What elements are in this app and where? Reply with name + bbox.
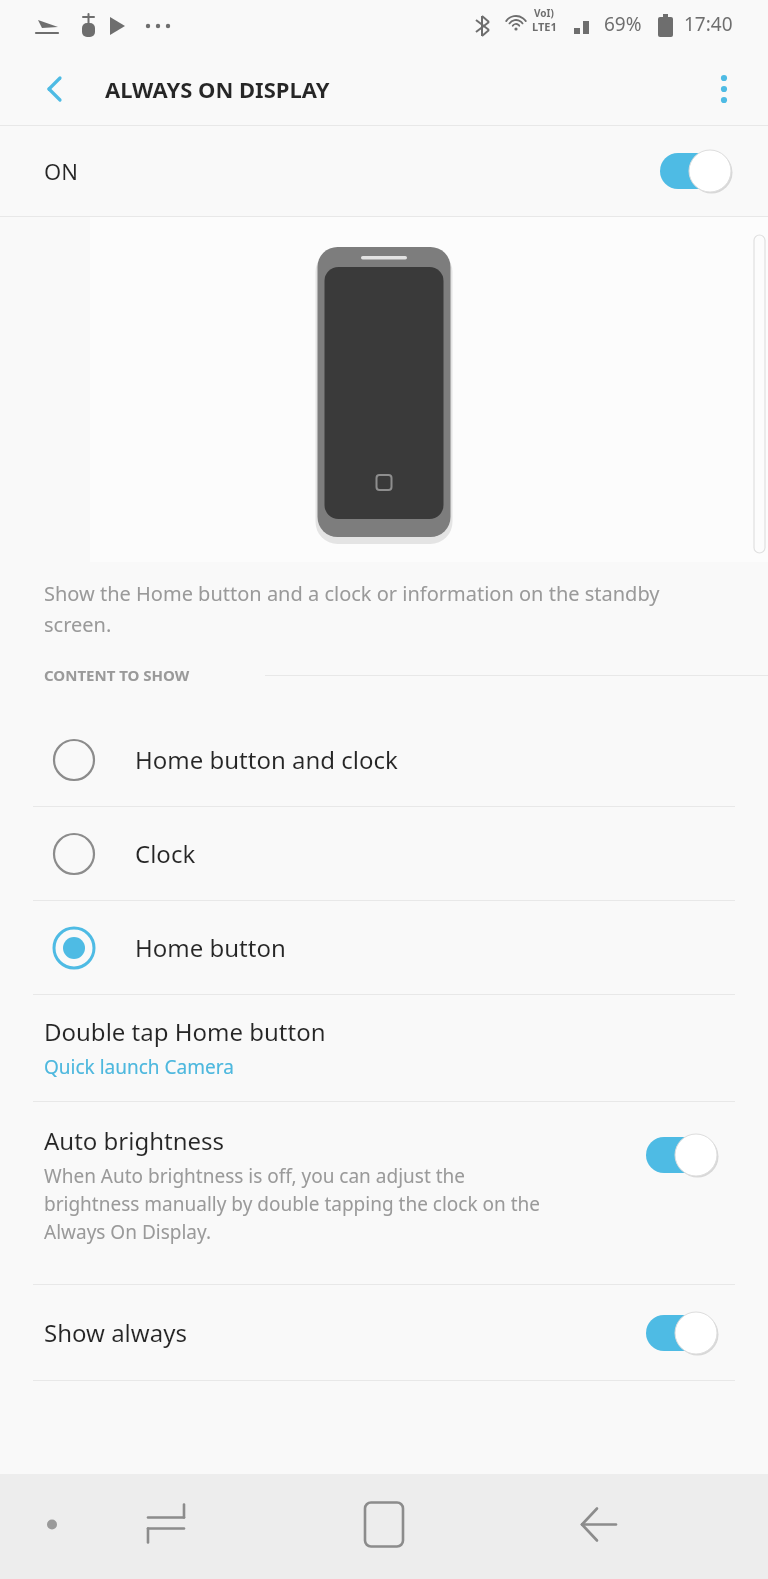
button[interactable]: Recents (136, 1492, 206, 1562)
staticText: Quick launch Camera (44, 1054, 234, 1080)
staticText: LTE1 (532, 19, 557, 34)
button[interactable]: Home button (0, 901, 768, 994)
staticText: 69% (604, 11, 642, 37)
staticText: ALWAYS ON DISPLAY (105, 74, 330, 104)
button[interactable]: Double tap Home button (0, 995, 768, 1101)
staticText: Home button and clock (135, 743, 398, 776)
staticText: CONTENT TO SHOW (44, 665, 190, 685)
staticText: Auto brightness (44, 1124, 225, 1157)
button[interactable]: Show always (0, 1285, 768, 1380)
button[interactable]: Home (349, 1492, 419, 1562)
staticText: Show the Home button and a clock or info… (44, 580, 708, 637)
staticText: 17:40 (684, 11, 733, 37)
button[interactable]: Back (564, 1492, 634, 1562)
staticText: Show always (44, 1316, 187, 1349)
staticText: When Auto brightness is off, you can adj… (44, 1163, 558, 1245)
button[interactable]: Back (28, 63, 80, 115)
button[interactable]: ON (0, 126, 768, 216)
button[interactable]: Auto brightness (0, 1102, 768, 1284)
staticText: Double tap Home button (44, 1015, 326, 1048)
staticText: VoI) (534, 6, 554, 20)
staticText: ON (44, 156, 78, 186)
button[interactable]: More options (698, 63, 750, 115)
button[interactable]: Clock (0, 807, 768, 900)
button[interactable]: Menu (18, 1492, 88, 1562)
staticText: Home button (135, 931, 286, 964)
button[interactable]: Home button and clock (0, 713, 768, 806)
staticText: Clock (135, 837, 196, 870)
